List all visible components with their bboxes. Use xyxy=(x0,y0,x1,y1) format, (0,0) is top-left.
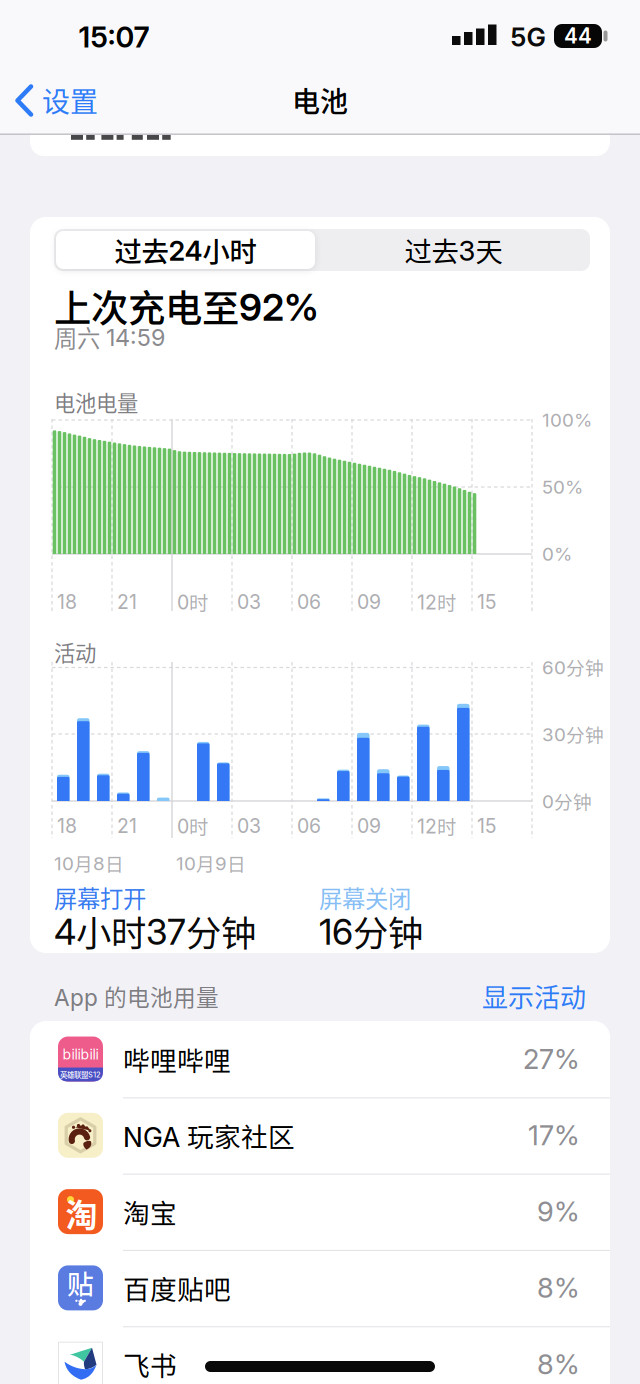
button[interactable]: 淘 xyxy=(30,1174,610,1250)
staticText: 4小时37分钟 xyxy=(54,905,256,957)
staticText: 0% xyxy=(542,543,572,565)
staticText: 0时 xyxy=(177,812,208,840)
staticText: 淘宝 xyxy=(123,1192,177,1231)
staticText: 屏幕打开 xyxy=(54,881,146,914)
staticText: 09 xyxy=(357,814,381,838)
staticText: 8% xyxy=(537,1271,580,1304)
staticText: 18 xyxy=(57,814,77,838)
staticText: 60分钟 xyxy=(542,653,604,680)
staticText: 27% xyxy=(523,1042,580,1076)
staticText: 9% xyxy=(537,1195,580,1228)
staticText: 50% xyxy=(542,476,583,498)
staticText: 03 xyxy=(237,590,261,614)
staticText: 屏幕关闭 xyxy=(319,881,411,914)
staticText: 100% xyxy=(542,409,592,431)
staticText: 03 xyxy=(237,814,261,838)
button[interactable]: 显示活动 xyxy=(386,983,586,1009)
staticText: 电池 xyxy=(292,80,348,120)
button[interactable]: 过去3天 xyxy=(317,231,590,269)
staticText: 06 xyxy=(297,590,321,614)
staticText: 30分钟 xyxy=(542,720,604,747)
staticText: 过去24小时 xyxy=(114,230,256,270)
staticText: 21 xyxy=(117,814,137,838)
staticText: 17% xyxy=(528,1119,580,1152)
staticText: 10月9日 xyxy=(176,849,246,876)
staticText: 06 xyxy=(297,814,321,838)
staticText: 0时 xyxy=(177,588,208,616)
staticText: bilibili xyxy=(62,1046,98,1063)
staticText: 百度贴吧 xyxy=(123,1269,231,1307)
staticText: 15:07 xyxy=(78,20,149,54)
staticText: 18 xyxy=(57,590,77,614)
staticText: 21 xyxy=(117,590,137,614)
button[interactable]: bilibili xyxy=(30,1021,610,1097)
staticText: 0分钟 xyxy=(542,787,592,814)
staticText: 英雄联盟S12 xyxy=(60,1069,101,1080)
staticText: 贴 xyxy=(67,1263,94,1302)
staticText: 淘 xyxy=(65,1190,97,1236)
staticText: 16分钟 xyxy=(319,905,423,957)
staticText: 12时 xyxy=(417,812,456,840)
button[interactable]: NGA 玩家社区 xyxy=(30,1097,610,1173)
staticText: 周六 14:59 xyxy=(54,320,165,354)
staticText: 飞书 xyxy=(123,1345,177,1383)
staticText: 过去3天 xyxy=(404,230,502,270)
staticText: 活动 xyxy=(54,637,96,667)
button[interactable]: 飞书 xyxy=(30,1326,610,1384)
staticText: App 的电池用量 xyxy=(54,980,219,1012)
staticText: 15 xyxy=(477,814,497,838)
button[interactable]: 返回设置 xyxy=(14,78,154,122)
staticText: 09 xyxy=(357,590,381,614)
staticText: 电池电量 xyxy=(54,387,138,417)
button[interactable]: 过去24小时 xyxy=(56,231,315,269)
staticText: 44 xyxy=(564,23,592,48)
staticText: 12时 xyxy=(417,588,456,616)
staticText: 15 xyxy=(477,590,497,614)
staticText: 8% xyxy=(537,1348,580,1381)
staticText: 10月8日 xyxy=(54,849,124,876)
staticText: 上次充电至92% xyxy=(54,279,319,333)
staticText: 显示活动 xyxy=(482,977,586,1015)
staticText: NGA 玩家社区 xyxy=(123,1116,295,1155)
button[interactable]: 贴 xyxy=(30,1250,610,1326)
staticText: 设置 xyxy=(42,80,98,120)
staticText: 5G xyxy=(510,21,545,53)
staticText: 哔哩哔哩 xyxy=(123,1040,231,1078)
